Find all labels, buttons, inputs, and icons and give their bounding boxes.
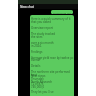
staticText: overall [31, 58, 41, 62]
staticText: Here is a quick summary of it [31, 17, 71, 21]
staticText: Next steps [31, 74, 46, 78]
staticText: They let you 3 se [31, 90, 54, 94]
staticText: 12 of 875 [31, 82, 44, 86]
staticText: New chat [20, 5, 34, 9]
staticText: over a six month [31, 41, 54, 45]
staticText: that you asked [31, 20, 51, 24]
staticText: The study tracked [31, 32, 56, 36]
staticText: 745,000,0 [31, 85, 45, 89]
staticText: Summarize this [53, 11, 72, 14]
button[interactable]: Summarize this [51, 10, 73, 14]
staticText: Thursday [31, 77, 44, 81]
staticText: the sites [31, 35, 43, 39]
staticText: Overview report [31, 26, 53, 30]
staticText: Details [31, 64, 41, 68]
staticText: North Research [31, 80, 53, 84]
staticText: Average yield rose by twelve pc [31, 56, 74, 60]
button[interactable]: Here is a quick summary of it [30, 15, 74, 96]
button[interactable]: New chat [18, 4, 78, 9]
staticText: in 2024. [31, 44, 42, 48]
staticText: The northern site performed best [31, 70, 74, 77]
staticText: Findings [31, 50, 43, 54]
